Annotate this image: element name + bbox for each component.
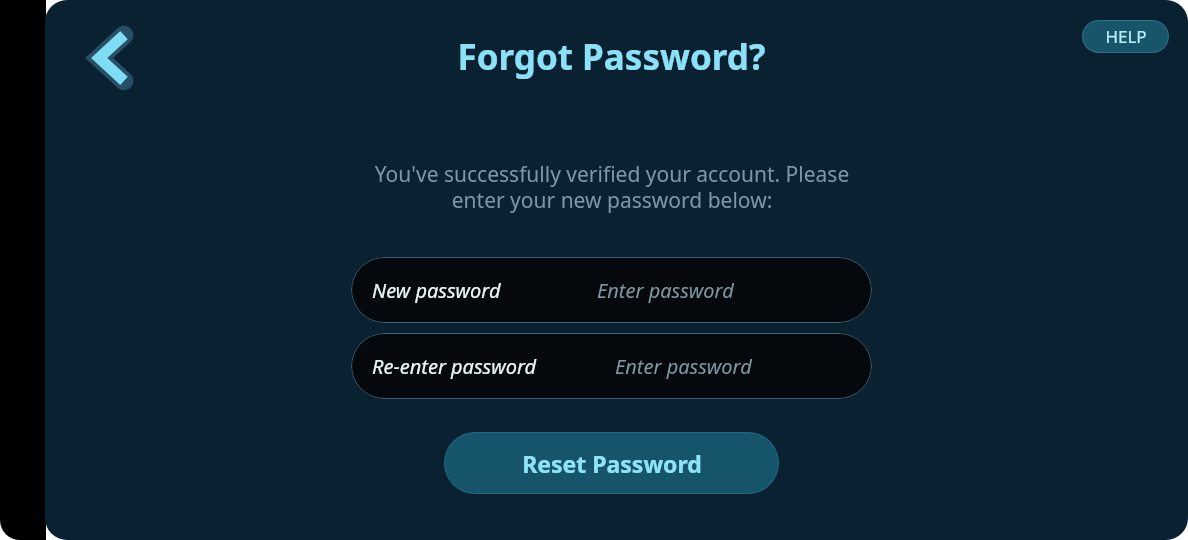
staticText: HELP [1105,25,1147,48]
button[interactable]: New password [351,257,872,323]
button[interactable]: Reset Password [444,432,779,494]
staticText: You've successfully verified your accoun… [352,160,872,214]
staticText: Reset Password [522,448,702,479]
staticText: New password [372,277,501,304]
staticText: Re-enter password [372,353,537,380]
staticText: Enter password [615,353,752,380]
button[interactable]: Back [78,24,146,92]
staticText: Enter password [597,277,734,304]
button[interactable]: Re-enter password [351,333,872,399]
button[interactable]: HELP [1082,20,1169,53]
staticText: Forgot Password? [457,33,766,81]
